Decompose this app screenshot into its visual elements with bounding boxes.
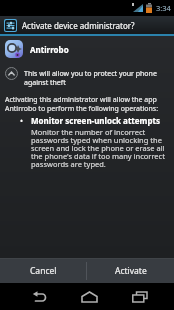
button[interactable]: Cancel (0, 259, 86, 283)
staticText: Monitor screen-unlock attempts (31, 115, 160, 126)
staticText: Activating this administrator will allow… (5, 95, 159, 113)
staticText: Monitor the number of incorrect password… (31, 127, 165, 170)
staticText: Activate (115, 265, 147, 277)
staticText: Antirrobo (30, 44, 69, 55)
button[interactable]: Activate (87, 259, 174, 283)
staticText: This will allow you to protect your phon… (24, 69, 157, 87)
staticText: Cancel (30, 265, 57, 277)
button[interactable] (81, 291, 98, 303)
staticText: Activate device administrator? (22, 20, 135, 31)
staticText: 3:34 (156, 3, 171, 13)
button[interactable] (132, 291, 148, 303)
staticText: • (20, 115, 24, 126)
button[interactable] (32, 291, 47, 303)
button[interactable] (5, 67, 18, 80)
